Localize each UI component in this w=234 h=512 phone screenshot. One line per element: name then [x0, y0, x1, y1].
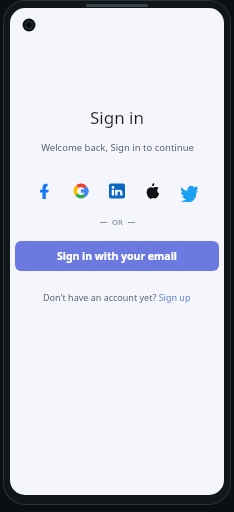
button[interactable]: Sign in with LinkedIn — [106, 180, 128, 202]
staticText: Sign in with your email — [57, 249, 177, 263]
button[interactable]: Sign in with Twitter — [178, 180, 200, 202]
button[interactable]: Sign in with Facebook — [34, 180, 56, 202]
button[interactable]: Sign in with Google — [70, 180, 92, 202]
button[interactable]: Don't have an account yet? Sign up — [37, 288, 197, 306]
button[interactable]: Sign in with your email — [15, 241, 219, 271]
button[interactable]: Sign in with Apple — [142, 180, 164, 202]
staticText: Sign in — [90, 106, 144, 129]
staticText: Don't have an account yet? Sign up — [43, 291, 191, 303]
staticText: Welcome back, Sign in to continue — [41, 141, 194, 154]
staticText: OR — [112, 217, 123, 227]
